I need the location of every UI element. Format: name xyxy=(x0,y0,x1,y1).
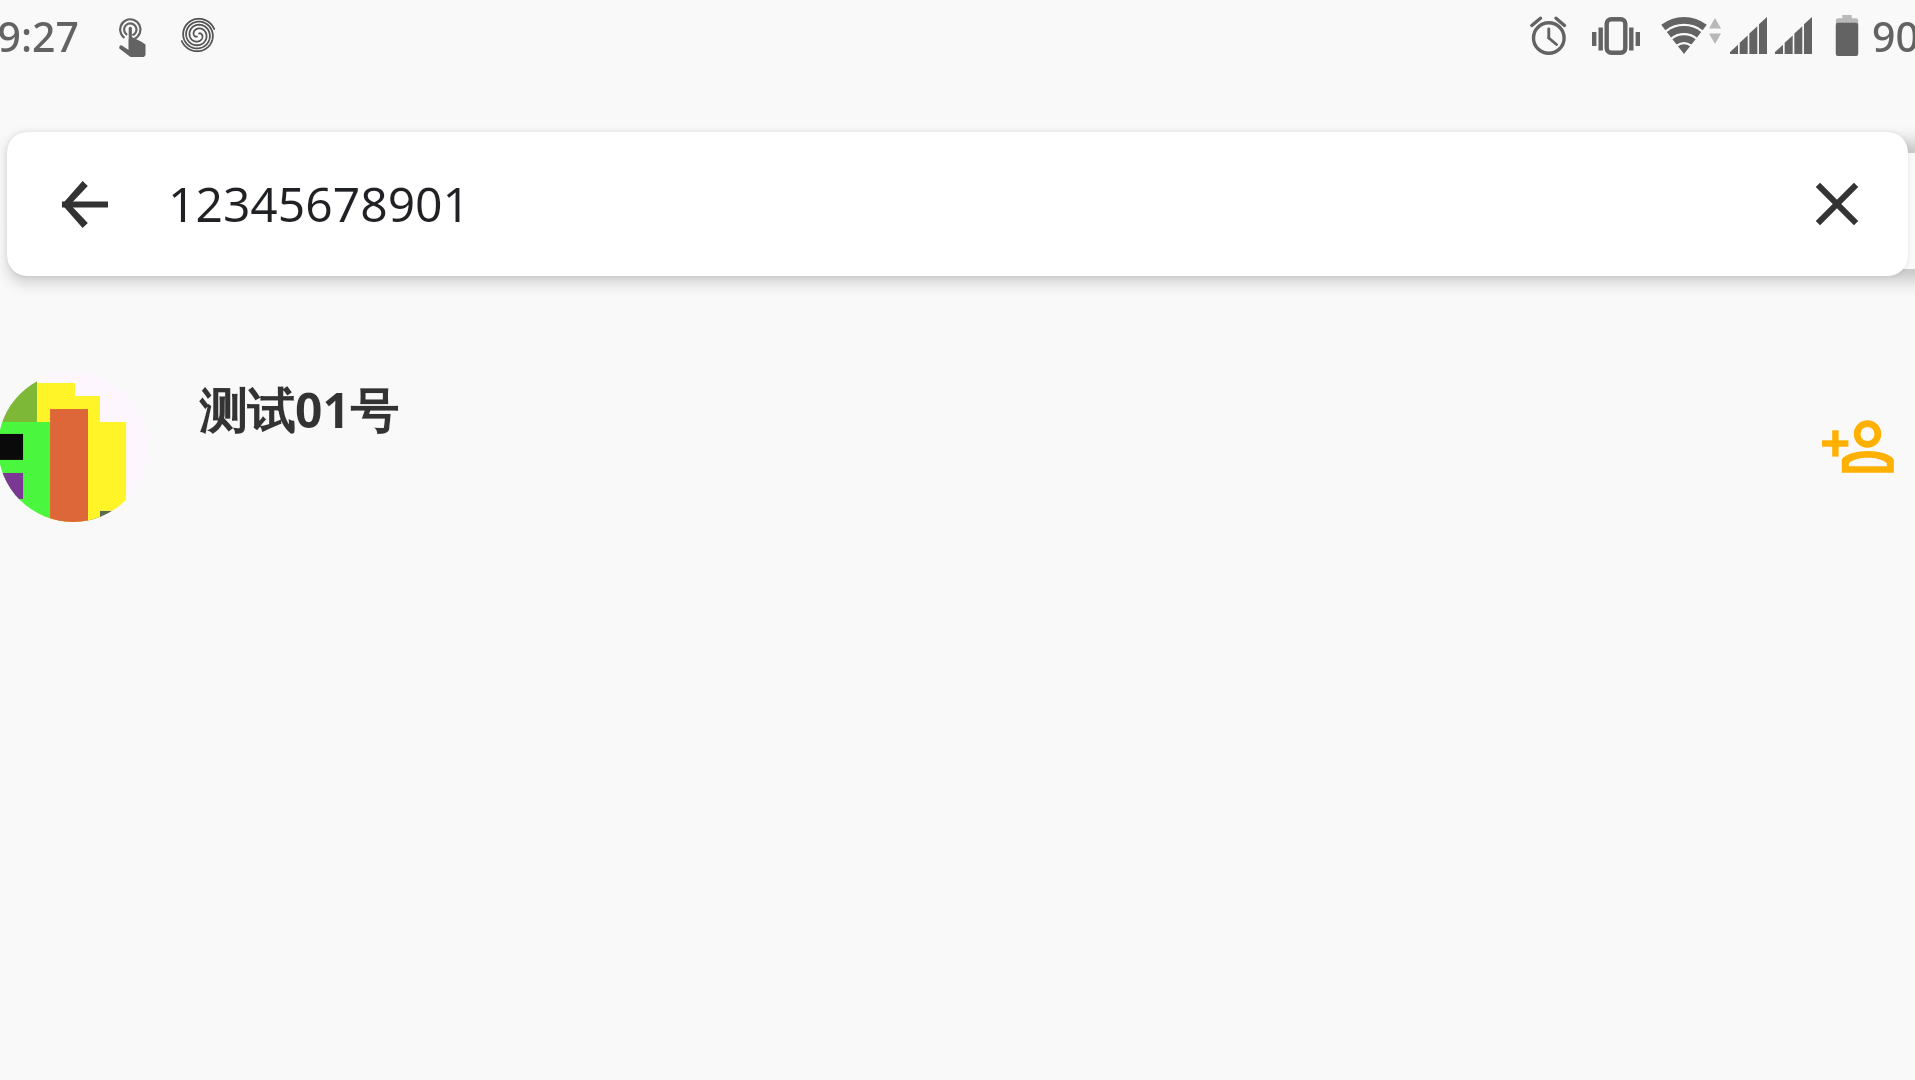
staticText: 90% xyxy=(1872,8,1915,64)
staticText: 19:27 xyxy=(0,8,79,64)
button[interactable]: 12345678901 xyxy=(147,132,1777,276)
staticText: 12345678901 xyxy=(168,171,471,236)
staticText: 测试01号 xyxy=(199,377,398,443)
button[interactable]: Add contact xyxy=(1806,395,1910,499)
button[interactable]: Clear xyxy=(1789,156,1885,252)
button[interactable]: Back xyxy=(36,156,132,252)
button[interactable]: 测试01号 xyxy=(0,360,1915,536)
